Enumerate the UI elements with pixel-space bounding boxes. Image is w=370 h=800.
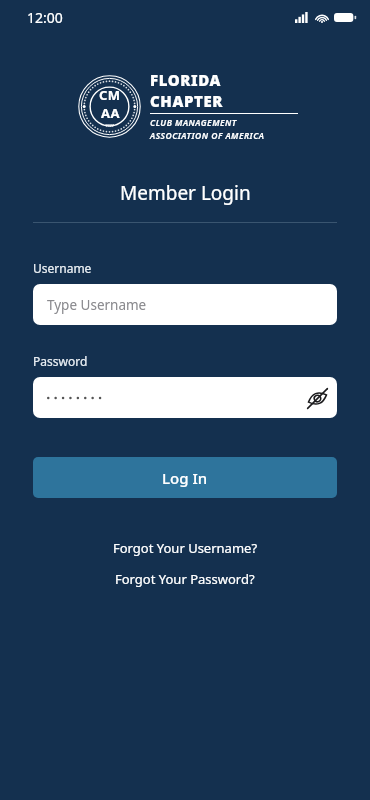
staticText: ASSOCIATION OF AMERICA xyxy=(150,130,265,142)
staticText: Forgot Your Password? xyxy=(115,570,255,588)
staticText: Type Username xyxy=(47,296,147,314)
button[interactable]: Forgot Your Password? xyxy=(0,570,370,588)
staticText: CM xyxy=(99,86,121,104)
staticText: Username xyxy=(33,260,92,276)
staticText: CHAPTER xyxy=(150,91,224,111)
staticText: 12:00 xyxy=(27,8,63,27)
button[interactable]: Log In xyxy=(33,457,337,498)
staticText: AA xyxy=(101,104,120,122)
staticText: Member Login xyxy=(120,180,251,206)
button[interactable]: Type Username xyxy=(33,284,337,325)
staticText: FLORIDA xyxy=(150,70,222,90)
staticText: CLUB MANAGEMENT xyxy=(150,117,237,129)
staticText: Log In xyxy=(162,468,208,488)
staticText: Password xyxy=(33,353,88,369)
staticText: 1927 xyxy=(105,123,115,128)
button[interactable]: Forgot Your Username? xyxy=(0,539,370,557)
button[interactable]: Show password xyxy=(297,378,337,418)
staticText: Forgot Your Username? xyxy=(113,539,258,557)
button[interactable]: Show password xyxy=(33,377,337,418)
